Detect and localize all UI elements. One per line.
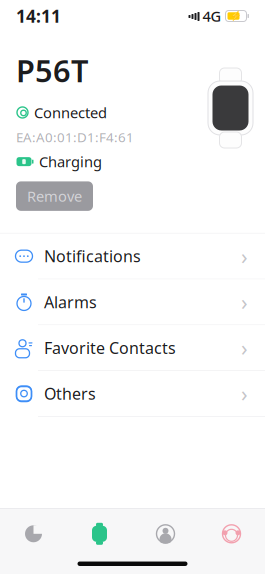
button[interactable]: Others [0, 371, 265, 416]
button[interactable]: Community [198, 512, 264, 556]
staticText: › [241, 379, 248, 408]
staticText: 14:11 [16, 4, 61, 27]
staticText: Favorite Contacts [44, 337, 176, 358]
staticText: P56T [16, 50, 88, 91]
staticText: › [241, 334, 248, 362]
staticText: › [241, 288, 248, 316]
staticText: ⚡ [230, 11, 242, 21]
staticText: Connected [34, 103, 107, 122]
staticText: › [241, 242, 248, 270]
button[interactable]: Device [66, 512, 132, 556]
button[interactable]: Statistics [0, 512, 66, 556]
button[interactable]: Notifications [0, 234, 265, 279]
staticText: Others [44, 383, 96, 404]
staticText: Remove [27, 186, 82, 206]
button[interactable]: Remove [16, 181, 93, 211]
staticText: Charging [39, 152, 102, 171]
button[interactable]: Alarms [0, 279, 265, 324]
staticText: Notifications [44, 245, 141, 267]
staticText: Alarms [44, 291, 97, 312]
staticText: 4G [202, 6, 221, 26]
button[interactable]: Profile [132, 512, 198, 556]
button[interactable]: Favorite Contacts [0, 325, 265, 370]
staticText: EA:A0:01:D1:F4:61 [16, 128, 134, 146]
